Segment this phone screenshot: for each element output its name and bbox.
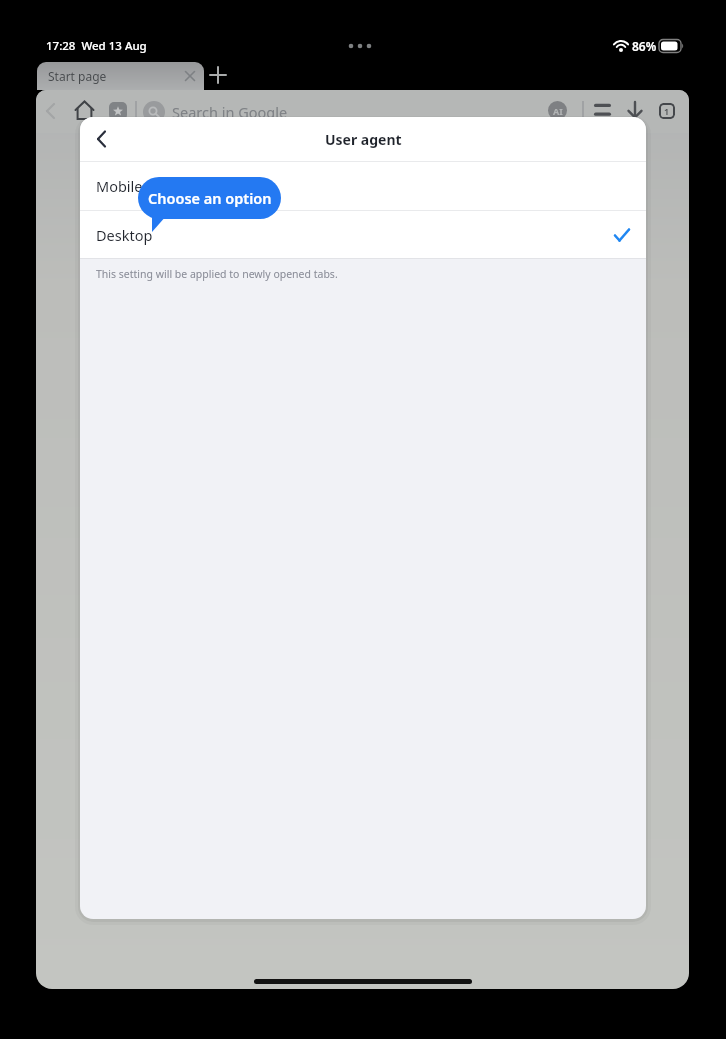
button[interactable]: Desktop (80, 211, 646, 258)
button[interactable] (209, 66, 227, 84)
button[interactable] (184, 70, 196, 82)
staticText: Mobile (96, 176, 143, 196)
staticText: Choose an option (148, 188, 272, 208)
staticText: 86% (632, 38, 657, 54)
staticText: 1 (664, 105, 670, 117)
staticText: Desktop (96, 225, 153, 245)
button[interactable] (44, 103, 58, 119)
button[interactable] (74, 100, 95, 122)
button[interactable] (94, 130, 110, 148)
button[interactable]: AI (548, 101, 567, 120)
staticText: User agent (325, 130, 402, 149)
staticText: AI (553, 105, 563, 117)
button[interactable] (594, 102, 611, 120)
staticText: This setting will be applied to newly op… (96, 267, 338, 281)
button[interactable]: Mobile (80, 162, 646, 210)
button[interactable] (109, 102, 127, 121)
button[interactable]: Start page (37, 62, 204, 90)
button[interactable]: 1 (659, 103, 675, 119)
staticText: Start page (48, 68, 107, 84)
staticText: 17:28 Wed 13 Aug (46, 38, 147, 54)
button[interactable] (627, 101, 643, 121)
button[interactable]: Search in Google (143, 90, 543, 133)
staticText: Search in Google (172, 102, 288, 122)
button[interactable]: Choose an option (138, 177, 281, 219)
